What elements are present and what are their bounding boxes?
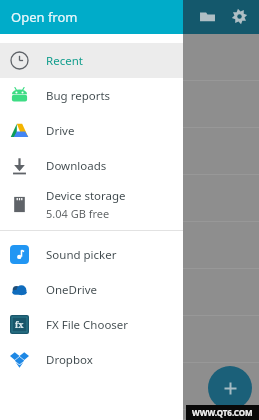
staticText: Downloads: [46, 158, 107, 174]
button[interactable]: Bug reports: [0, 78, 183, 113]
staticText: fx: [15, 319, 24, 330]
button[interactable]: Recent: [0, 43, 183, 78]
staticText: Open from: [11, 8, 78, 26]
button[interactable]: Downloads: [0, 148, 183, 183]
staticText: Device storage: [46, 188, 126, 204]
button[interactable]: fx: [0, 307, 183, 342]
button[interactable]: Settings: [231, 8, 248, 25]
button[interactable]: Add: [208, 366, 252, 410]
staticText: Dropbox: [46, 352, 93, 368]
staticText: 5.04 GB free: [46, 206, 110, 221]
staticText: Sound picker: [46, 247, 117, 263]
button[interactable]: Sound picker: [0, 237, 183, 272]
staticText: OneDrive: [46, 282, 98, 298]
staticText: Recent: [46, 53, 83, 69]
button[interactable]: Folders: [199, 8, 216, 25]
button[interactable]: Device storage: [0, 183, 183, 225]
button[interactable]: Drive: [0, 113, 183, 148]
staticText: Drive: [46, 123, 75, 139]
staticText: FX File Chooser: [46, 317, 129, 333]
staticText: WWW.QT6.COM: [192, 407, 253, 418]
button[interactable]: OneDrive: [0, 272, 183, 307]
staticText: Bug reports: [46, 88, 111, 104]
button[interactable]: Dropbox: [0, 342, 183, 377]
